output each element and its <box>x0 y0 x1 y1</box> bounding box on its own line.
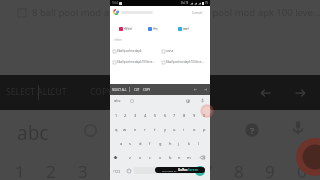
button[interactable]: चित्र <box>148 24 158 34</box>
button[interactable]: j <box>174 139 184 148</box>
button[interactable]: n <box>174 153 184 162</box>
staticText: d <box>139 141 142 146</box>
staticText: u <box>173 127 176 132</box>
button[interactable]: 8 <box>179 111 189 120</box>
staticText: 1 <box>15 160 25 180</box>
button[interactable]: b <box>165 153 175 162</box>
button[interactable]: 8ballpoolmodapk100leve… <box>113 58 155 66</box>
staticText: r <box>144 127 146 132</box>
button[interactable]: m <box>184 153 194 162</box>
staticText: t <box>154 127 156 132</box>
button[interactable]: Shift <box>111 153 120 162</box>
staticText: c <box>149 155 151 160</box>
button[interactable]: 8ballpoolmodapk100leve… <box>162 58 204 66</box>
staticText: q <box>115 127 118 132</box>
button[interactable]: s <box>125 139 135 148</box>
button[interactable]: 9 <box>189 111 199 120</box>
button[interactable]: Emoji <box>124 165 133 176</box>
staticText: COPY <box>90 86 113 98</box>
button[interactable]: Backspace <box>198 153 207 162</box>
staticText: p <box>203 127 206 132</box>
staticText: ?123 <box>113 169 121 173</box>
staticText: z <box>129 155 131 160</box>
staticText: x <box>139 155 142 160</box>
button[interactable]: वीडियो <box>119 24 132 34</box>
staticText: रुचिकर <box>114 38 122 42</box>
button[interactable]: 0 <box>199 111 209 120</box>
button[interactable]: c <box>145 153 155 162</box>
button[interactable]: w <box>120 125 130 134</box>
staticText: 5 <box>154 113 157 118</box>
staticText: w <box>123 127 127 132</box>
staticText: SELECT ALL <box>6 86 52 98</box>
button[interactable]: t <box>150 125 160 134</box>
button[interactable]: Voice input <box>200 98 205 103</box>
button[interactable]: Help <box>186 99 190 103</box>
button[interactable]: Space <box>134 167 194 174</box>
button[interactable]: खबरें <box>178 24 189 34</box>
button[interactable]: 3 <box>130 111 140 120</box>
staticText: 75 <box>205 1 208 5</box>
staticText: i <box>183 127 185 132</box>
button[interactable]: l <box>194 139 204 148</box>
button[interactable]: Enter <box>195 166 205 176</box>
staticText: Screen <box>188 168 199 172</box>
staticText: b <box>169 155 172 160</box>
staticText: 6 <box>164 113 167 118</box>
staticText: a <box>120 141 123 146</box>
staticText: Recorded by <box>162 169 177 172</box>
button[interactable]: f <box>145 139 155 148</box>
button[interactable]: 4 <box>140 111 150 120</box>
staticText: f <box>149 141 151 146</box>
staticText: 4 <box>109 160 119 180</box>
staticText: 0 <box>203 113 206 118</box>
button[interactable]: 6 <box>160 111 170 120</box>
button[interactable]: 5 <box>150 111 160 120</box>
staticText: 3 <box>134 113 137 118</box>
button[interactable]: x <box>135 153 145 162</box>
button[interactable]: Cancel <box>110 6 210 18</box>
staticText: v <box>159 155 162 160</box>
button[interactable]: u <box>169 125 179 134</box>
staticText: 2 <box>46 160 56 180</box>
staticText: g <box>159 141 162 146</box>
button[interactable]: 7 <box>169 111 179 120</box>
button[interactable]: 8ballpoolmodapk <box>113 47 142 55</box>
staticText: ? <box>187 99 189 103</box>
button[interactable]: d <box>135 139 145 148</box>
staticText: CUT <box>50 86 67 98</box>
button[interactable]: ?123 <box>111 165 122 176</box>
staticText: o <box>193 127 196 132</box>
button[interactable]: v <box>155 153 165 162</box>
button[interactable]: e <box>130 125 140 134</box>
button[interactable]: q <box>111 125 121 134</box>
button[interactable]: y <box>160 125 170 134</box>
staticText: 1 <box>115 113 118 118</box>
button[interactable]: z <box>125 153 135 162</box>
staticText: l <box>198 141 200 146</box>
button[interactable]: 2 <box>120 111 130 120</box>
button[interactable]: r <box>140 125 150 134</box>
staticText: y <box>164 127 167 132</box>
staticText: खबरें <box>183 27 189 31</box>
staticText: COPY <box>143 88 150 92</box>
button[interactable]: k <box>184 139 194 148</box>
button[interactable]: o <box>189 125 199 134</box>
staticText: 9 <box>265 160 275 180</box>
staticText: SELECT ALL <box>112 88 127 92</box>
staticText: 9 <box>193 113 196 118</box>
button[interactable]: h <box>165 139 175 148</box>
button[interactable]: anna <box>162 47 174 55</box>
button[interactable]: p <box>199 125 209 134</box>
staticText: 2 <box>124 113 127 118</box>
staticText: 8ballpoolmodapk <box>117 49 142 53</box>
button[interactable]: a <box>116 139 126 148</box>
button[interactable]: 1 <box>111 111 121 120</box>
staticText: e <box>134 127 137 132</box>
staticText: 9:54 <box>112 1 118 5</box>
staticText: s <box>129 141 131 146</box>
button[interactable]: i <box>179 125 189 134</box>
staticText: m <box>187 155 191 160</box>
button[interactable]: g <box>155 139 165 148</box>
staticText: VoLTE <box>181 1 189 5</box>
